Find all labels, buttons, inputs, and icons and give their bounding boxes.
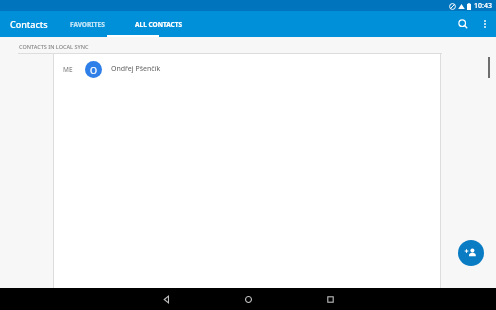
staticText: ME	[63, 65, 85, 74]
button[interactable]: Search	[452, 13, 474, 35]
staticText: 10:43	[474, 1, 492, 11]
button[interactable]: ME	[54, 54, 440, 84]
staticText: O	[90, 64, 98, 76]
button[interactable]: Back	[136, 288, 196, 310]
button[interactable]: Home	[218, 288, 278, 310]
button[interactable]: Contacts	[8, 14, 50, 34]
button[interactable]: Add contact	[458, 240, 484, 266]
button[interactable]: ALL CONTACTS	[129, 15, 189, 34]
staticText: FAVORITES	[70, 20, 105, 29]
staticText: Ondřej Pšenčík	[111, 64, 161, 74]
button[interactable]: FAVORITES	[64, 15, 111, 34]
staticText: ALL CONTACTS	[135, 20, 183, 29]
staticText: Contacts	[10, 18, 48, 30]
staticText: CONTACTS IN LOCAL SYNC	[19, 43, 89, 50]
button[interactable]: More options	[474, 13, 496, 35]
button[interactable]: Recent apps	[300, 288, 360, 310]
